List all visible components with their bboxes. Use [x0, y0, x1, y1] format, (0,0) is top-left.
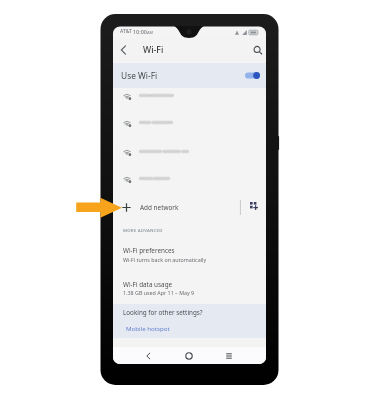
button[interactable]: Use Wi-Fi [113, 63, 266, 88]
staticText: 10:00 [133, 28, 147, 35]
button[interactable]: Wi-Fi data usage [113, 274, 266, 302]
button[interactable] [113, 138, 266, 165]
staticText: Wi-Fi data usage [123, 280, 173, 289]
button[interactable]: Scan QR code [250, 202, 259, 211]
button[interactable]: Back [139, 347, 157, 364]
button[interactable]: Looking for other settings? [113, 304, 266, 338]
staticText: MORE ADVANCED [123, 227, 163, 233]
staticText: Add network [140, 203, 179, 212]
button[interactable]: Wi-Fi preferences [113, 240, 266, 269]
button[interactable] [113, 165, 266, 192]
staticText: AT&T [120, 28, 132, 35]
button[interactable]: Recent apps [220, 347, 238, 364]
staticText: Wi-Fi preferences [123, 246, 175, 255]
button[interactable]: Mobile hotspot [126, 324, 170, 332]
staticText: Mobile hotspot [126, 324, 170, 332]
staticText: Use Wi-Fi [121, 70, 158, 81]
staticText: Wi-Fi turns back on automatically [123, 256, 207, 263]
staticText: 1.38 GB used Apr 11 – May 9 [123, 289, 195, 296]
button[interactable]: Back [116, 43, 130, 57]
button[interactable] [113, 82, 266, 109]
staticText: Looking for other settings? [123, 308, 203, 317]
staticText: Wi-Fi [143, 44, 164, 56]
button[interactable]: Home [180, 347, 198, 364]
staticText: AM [147, 30, 153, 35]
button[interactable]: Search [251, 43, 265, 57]
button[interactable]: Add network [113, 194, 266, 221]
button[interactable] [113, 109, 266, 136]
